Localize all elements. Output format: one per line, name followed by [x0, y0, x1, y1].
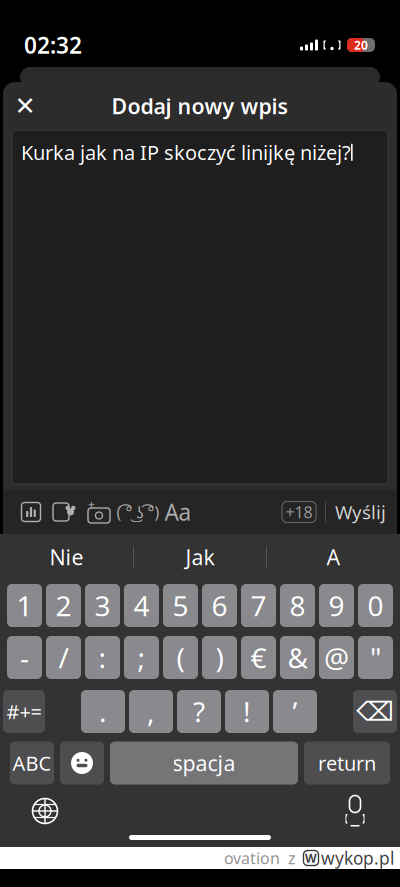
- staticText: 02:32: [24, 30, 82, 60]
- button[interactable]: 4: [124, 584, 159, 627]
- button[interactable]: ): [202, 636, 237, 679]
- button[interactable]: 7: [241, 584, 276, 627]
- button[interactable]: 1: [7, 584, 42, 627]
- staticText: ’: [292, 693, 297, 730]
- button[interactable]: (: [163, 636, 198, 679]
- button[interactable]: spacja: [110, 741, 298, 784]
- staticText: 5: [172, 587, 188, 624]
- button[interactable]: Emoji: [60, 741, 104, 784]
- staticText: !: [243, 693, 251, 730]
- button[interactable]: Formatting: [160, 495, 196, 529]
- button[interactable]: €: [241, 636, 276, 679]
- button[interactable]: Add poll: [14, 495, 48, 529]
- button[interactable]: 9: [319, 584, 354, 627]
- staticText: ✕: [14, 92, 35, 120]
- staticText: 4: [133, 587, 149, 624]
- button[interactable]: 5: [163, 584, 198, 627]
- button[interactable]: 3: [85, 584, 120, 627]
- staticText: ovation z: [224, 847, 296, 869]
- button[interactable]: &: [280, 636, 315, 679]
- button[interactable]: return: [304, 741, 390, 784]
- staticText: 20: [354, 37, 368, 53]
- staticText: ⌫: [356, 696, 394, 727]
- staticText: €: [250, 639, 266, 676]
- button[interactable]: :: [85, 636, 120, 679]
- staticText: A: [326, 543, 340, 571]
- button[interactable]: Add image: [48, 495, 82, 529]
- button[interactable]: /: [46, 636, 81, 679]
- staticText: 8: [289, 587, 305, 624]
- button[interactable]: 0: [358, 584, 393, 627]
- button[interactable]: Jak: [134, 535, 266, 579]
- button[interactable]: Dictation: [331, 790, 379, 832]
- button[interactable]: 6: [202, 584, 237, 627]
- staticText: ): [215, 639, 223, 676]
- button[interactable]: #+=: [3, 690, 45, 733]
- button[interactable]: 8: [280, 584, 315, 627]
- button[interactable]: ,: [129, 690, 173, 733]
- staticText: 0: [367, 587, 383, 624]
- staticText: 6: [211, 587, 227, 624]
- staticText: ,: [147, 693, 155, 730]
- staticText: .: [99, 693, 107, 730]
- staticText: Nie: [49, 543, 83, 571]
- button[interactable]: Delete: [353, 690, 397, 733]
- button[interactable]: !: [225, 690, 269, 733]
- staticText: 9: [328, 587, 344, 624]
- staticText: /: [58, 639, 68, 676]
- button[interactable]: ;: [124, 636, 159, 679]
- staticText: +: [88, 496, 95, 512]
- staticText: W: [305, 850, 317, 866]
- staticText: Jak: [185, 543, 214, 571]
- staticText: return: [318, 750, 376, 776]
- button[interactable]: 2: [46, 584, 81, 627]
- button[interactable]: Close: [3, 84, 47, 128]
- staticText: 2: [55, 587, 71, 624]
- button[interactable]: ABC: [10, 741, 54, 784]
- staticText: -: [20, 639, 29, 676]
- button[interactable]: ": [358, 636, 393, 679]
- staticText: @: [324, 639, 349, 676]
- button[interactable]: Emoticons: [116, 495, 160, 529]
- button[interactable]: A: [267, 535, 400, 579]
- staticText: ;: [137, 639, 145, 676]
- staticText: #+=: [6, 698, 41, 725]
- staticText: :: [98, 639, 106, 676]
- staticText: ABC: [12, 750, 51, 776]
- staticText: Wyślij: [335, 500, 386, 524]
- button[interactable]: Next keyboard: [21, 790, 69, 832]
- button[interactable]: Kurka jak na IP skoczyć linijkę niżej?: [12, 130, 388, 484]
- staticText: Dodaj nowy wpis: [111, 92, 288, 120]
- staticText: Aa: [164, 497, 191, 527]
- staticText: 1: [16, 587, 32, 624]
- staticText: (: [176, 639, 184, 676]
- staticText: &: [287, 639, 307, 676]
- staticText: 3: [94, 587, 110, 624]
- button[interactable]: ’: [273, 690, 317, 733]
- button[interactable]: +18: [282, 501, 316, 522]
- staticText: 7: [250, 587, 266, 624]
- staticText: ?: [193, 693, 205, 730]
- button[interactable]: .: [81, 690, 125, 733]
- staticText: +18: [285, 501, 312, 523]
- button[interactable]: Nie: [0, 535, 133, 579]
- staticText: Kurka jak na IP skoczyć linijkę niżej?: [21, 139, 351, 166]
- button[interactable]: Wyślij: [335, 494, 386, 530]
- button[interactable]: -: [7, 636, 42, 679]
- staticText: wykop.pl: [321, 846, 394, 869]
- button[interactable]: ?: [177, 690, 221, 733]
- staticText: ( ͡° ͜ʖ ͡°): [116, 501, 159, 523]
- button[interactable]: @: [319, 636, 354, 679]
- button[interactable]: Take photo: [82, 495, 116, 529]
- staticText: ": [370, 639, 381, 676]
- staticText: spacja: [172, 749, 235, 777]
